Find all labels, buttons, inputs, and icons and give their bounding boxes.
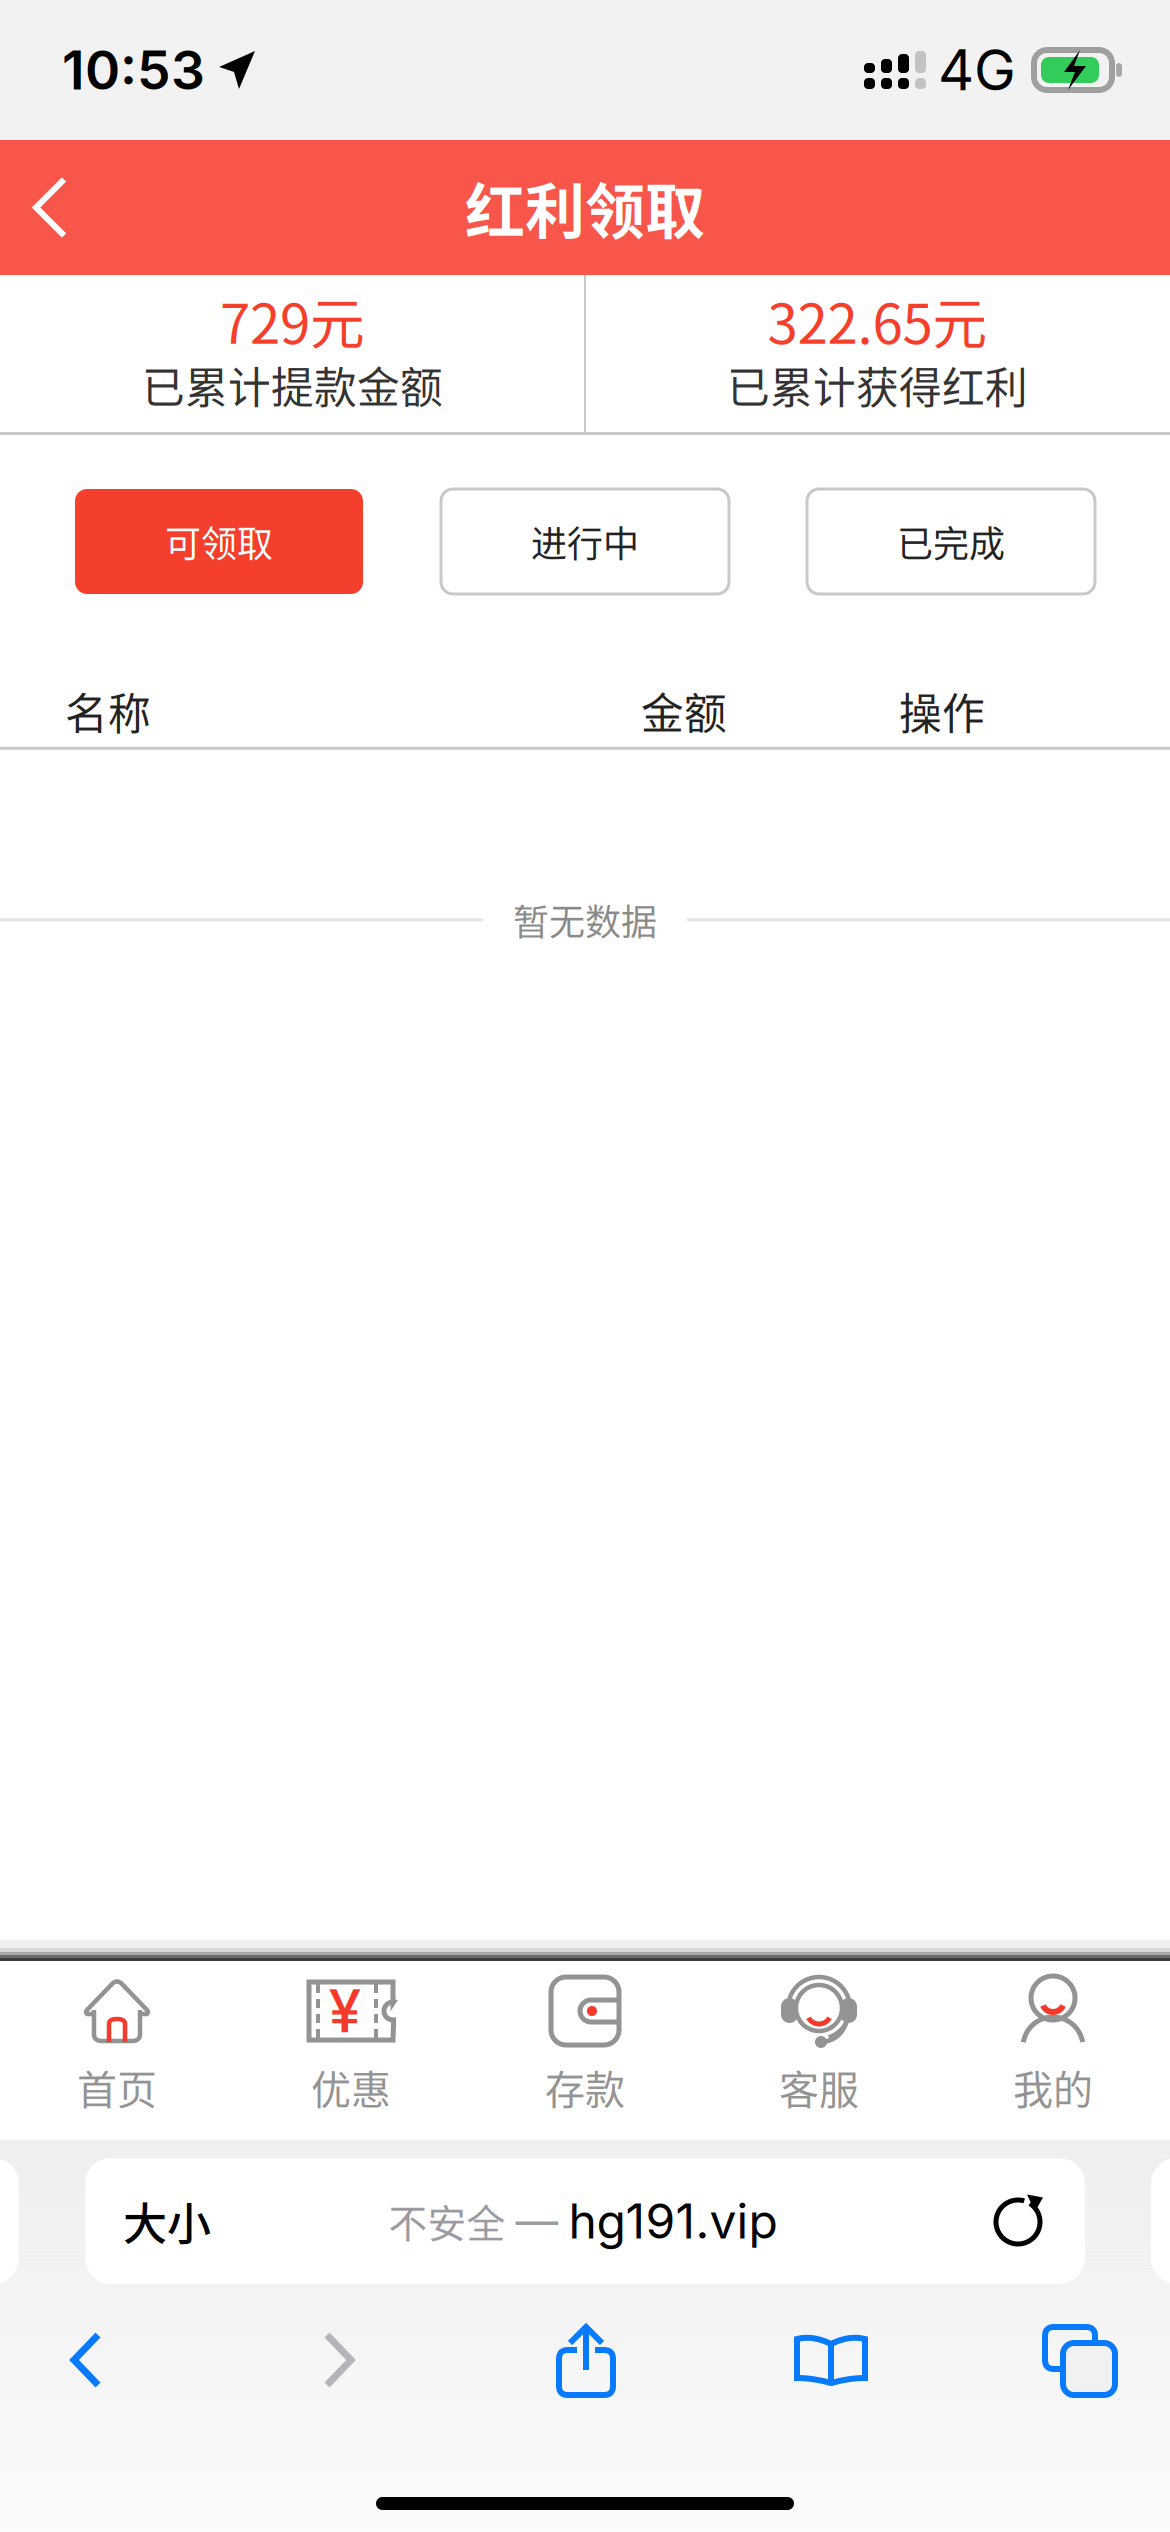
staticText: 10:53 bbox=[62, 38, 205, 102]
button[interactable]: ¥ bbox=[234, 1961, 468, 2140]
staticText: 大小 bbox=[123, 2189, 211, 2253]
staticText: 存款 bbox=[545, 2058, 625, 2116]
staticText: 322.65元 bbox=[767, 280, 987, 360]
staticText: 暂无数据 bbox=[513, 894, 657, 946]
staticText: 首页 bbox=[77, 2058, 157, 2116]
button[interactable]: 可领取 bbox=[75, 489, 363, 594]
staticText: 金额 bbox=[641, 680, 727, 742]
staticText: 操作 bbox=[899, 680, 985, 742]
staticText: 名称 bbox=[65, 680, 151, 742]
button[interactable]: 页面设置 bbox=[85, 2158, 231, 2284]
button[interactable]: 客服 bbox=[702, 1961, 936, 2140]
button[interactable]: 重新载入 bbox=[991, 2194, 1085, 2248]
button[interactable]: 存款 bbox=[468, 1961, 702, 2140]
staticText: 可领取 bbox=[165, 515, 273, 567]
staticText: — bbox=[515, 2195, 558, 2247]
button[interactable]: 书签 bbox=[667, 2320, 995, 2400]
button[interactable]: 分享 bbox=[505, 2320, 667, 2400]
staticText: hg191.vip bbox=[568, 2192, 777, 2250]
staticText: 已累计提款金额 bbox=[142, 354, 443, 416]
button[interactable]: 已完成 bbox=[807, 489, 1095, 594]
button[interactable]: 首页 bbox=[0, 1961, 234, 2140]
button[interactable]: 进行中 bbox=[441, 489, 729, 594]
button[interactable]: 返回 bbox=[0, 140, 105, 275]
staticText: 4G bbox=[938, 36, 1016, 104]
staticText: 不安全 bbox=[388, 2193, 505, 2249]
button[interactable]: 标签页 bbox=[995, 2320, 1163, 2400]
staticText: 客服 bbox=[779, 2058, 859, 2116]
staticText: ¥ bbox=[328, 1975, 361, 2046]
button[interactable]: 后退 bbox=[0, 2320, 173, 2400]
staticText: 我的 bbox=[1013, 2058, 1093, 2116]
button[interactable]: 我的 bbox=[936, 1961, 1170, 2140]
staticText: 已完成 bbox=[897, 515, 1005, 567]
button[interactable]: 前进 bbox=[173, 2320, 505, 2400]
staticText: 优惠 bbox=[311, 2058, 391, 2116]
staticText: 729元 bbox=[220, 280, 365, 360]
staticText: 红利领取 bbox=[465, 164, 705, 251]
staticText: 已累计获得红利 bbox=[727, 354, 1028, 416]
staticText: 进行中 bbox=[531, 515, 639, 567]
